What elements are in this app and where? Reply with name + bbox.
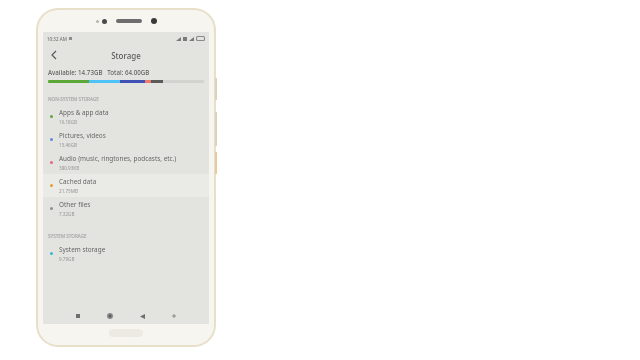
staticText: Other files — [59, 200, 91, 209]
staticText: 9.79GB — [59, 256, 75, 262]
staticText: Pictures, videos — [59, 131, 106, 140]
staticText: 15.46GB — [59, 142, 78, 148]
button[interactable]: Recent apps — [62, 308, 94, 324]
staticText: Audio (music, ringtones, podcasts, etc.) — [59, 154, 177, 163]
button[interactable]: Back — [46, 47, 62, 63]
staticText: Storage — [111, 50, 141, 61]
button[interactable]: Home — [94, 308, 126, 324]
staticText: System storage — [59, 245, 106, 254]
staticText: 7.32GB — [59, 211, 75, 217]
staticText: Apps & app data — [59, 108, 109, 117]
staticText: SYSTEM STORAGE — [48, 233, 87, 239]
staticText: NON-SYSTEM STORAGE — [48, 96, 99, 102]
button[interactable]: Pictures, videos — [43, 128, 209, 151]
staticText: 380.93KB — [59, 165, 80, 171]
button[interactable]: More — [158, 308, 190, 324]
button[interactable]: Cached data — [43, 174, 209, 197]
button[interactable]: Audio (music, ringtones, podcasts, etc.) — [43, 151, 209, 174]
staticText: 16.18GB — [59, 119, 78, 125]
staticText: 10:32 AM — [47, 36, 67, 42]
staticText: 21.75MB — [59, 188, 78, 194]
button[interactable]: System storage — [43, 242, 209, 265]
staticText: Available: 14.73GB Total: 64.00GB — [48, 68, 150, 76]
button[interactable]: Back — [126, 308, 158, 324]
button[interactable]: Other files — [43, 197, 209, 220]
button[interactable]: Apps & app data — [43, 105, 209, 128]
staticText: Cached data — [59, 177, 97, 186]
